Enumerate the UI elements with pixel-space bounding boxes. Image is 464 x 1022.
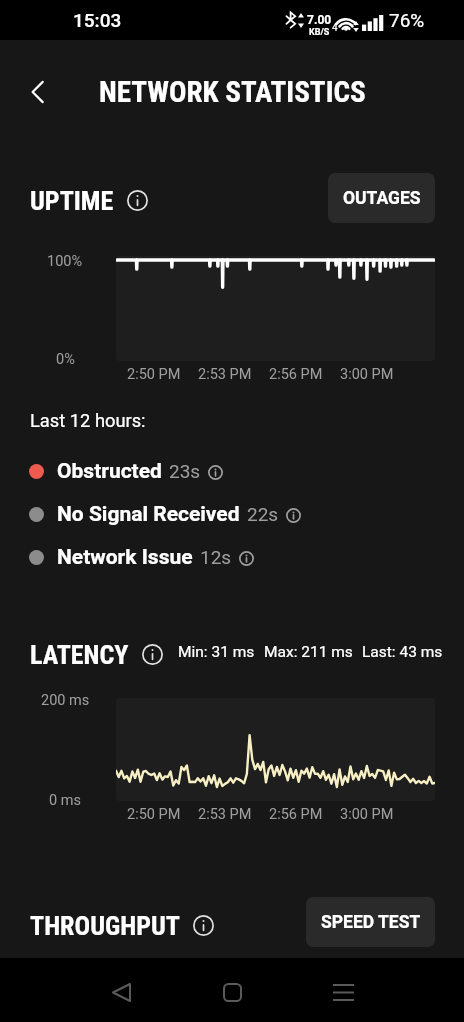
staticText: THROUGHPUT [30, 911, 180, 941]
staticText: 2:56 PM [269, 366, 323, 383]
staticText: 7.00 [307, 13, 332, 27]
button[interactable]: Recent apps [319, 968, 367, 1016]
button[interactable]: Back [14, 69, 59, 114]
staticText: 200 ms [41, 692, 90, 709]
staticText: Min: 31 ms [178, 643, 255, 661]
staticText: Last: 43 ms [362, 643, 443, 661]
staticText: No Signal Received [57, 502, 240, 527]
staticText: 3:00 PM [340, 366, 394, 383]
staticText: 2:50 PM [127, 366, 181, 383]
button[interactable]: Back [97, 968, 145, 1016]
staticText: 0% [56, 351, 75, 368]
staticText: 15:03 [73, 9, 122, 31]
staticText: 22s [247, 503, 279, 525]
staticText: 3:00 PM [340, 806, 394, 823]
staticText: 23s [169, 460, 201, 482]
button[interactable]: OUTAGES [328, 173, 435, 223]
button[interactable]: SPEED TEST [306, 897, 435, 947]
staticText: KB/S [309, 27, 330, 38]
staticText: Network Issue [57, 545, 193, 570]
staticText: UPTIME [30, 186, 114, 216]
staticText: 2:53 PM [198, 366, 252, 383]
staticText: 0 ms [49, 792, 81, 809]
button[interactable]: Home [208, 968, 256, 1016]
staticText: 100% [47, 253, 83, 270]
staticText: OUTAGES [343, 188, 421, 209]
staticText: 2:53 PM [198, 806, 252, 823]
staticText: LATENCY [30, 640, 129, 670]
staticText: 2:50 PM [127, 806, 181, 823]
staticText: SPEED TEST [321, 912, 421, 933]
staticText: 12s [200, 546, 232, 568]
staticText: 76% [389, 9, 425, 31]
staticText: Max: 211 ms [264, 643, 353, 661]
staticText: Obstructed [57, 459, 162, 484]
button[interactable]: No Signal Received [29, 499, 301, 529]
staticText: 4 [332, 22, 338, 34]
staticText: Last 12 hours: [30, 410, 146, 431]
button[interactable]: Obstructed [29, 456, 223, 486]
staticText: NETWORK STATISTICS [99, 75, 366, 109]
button[interactable]: Network Issue [29, 542, 254, 572]
staticText: 2:56 PM [269, 806, 323, 823]
